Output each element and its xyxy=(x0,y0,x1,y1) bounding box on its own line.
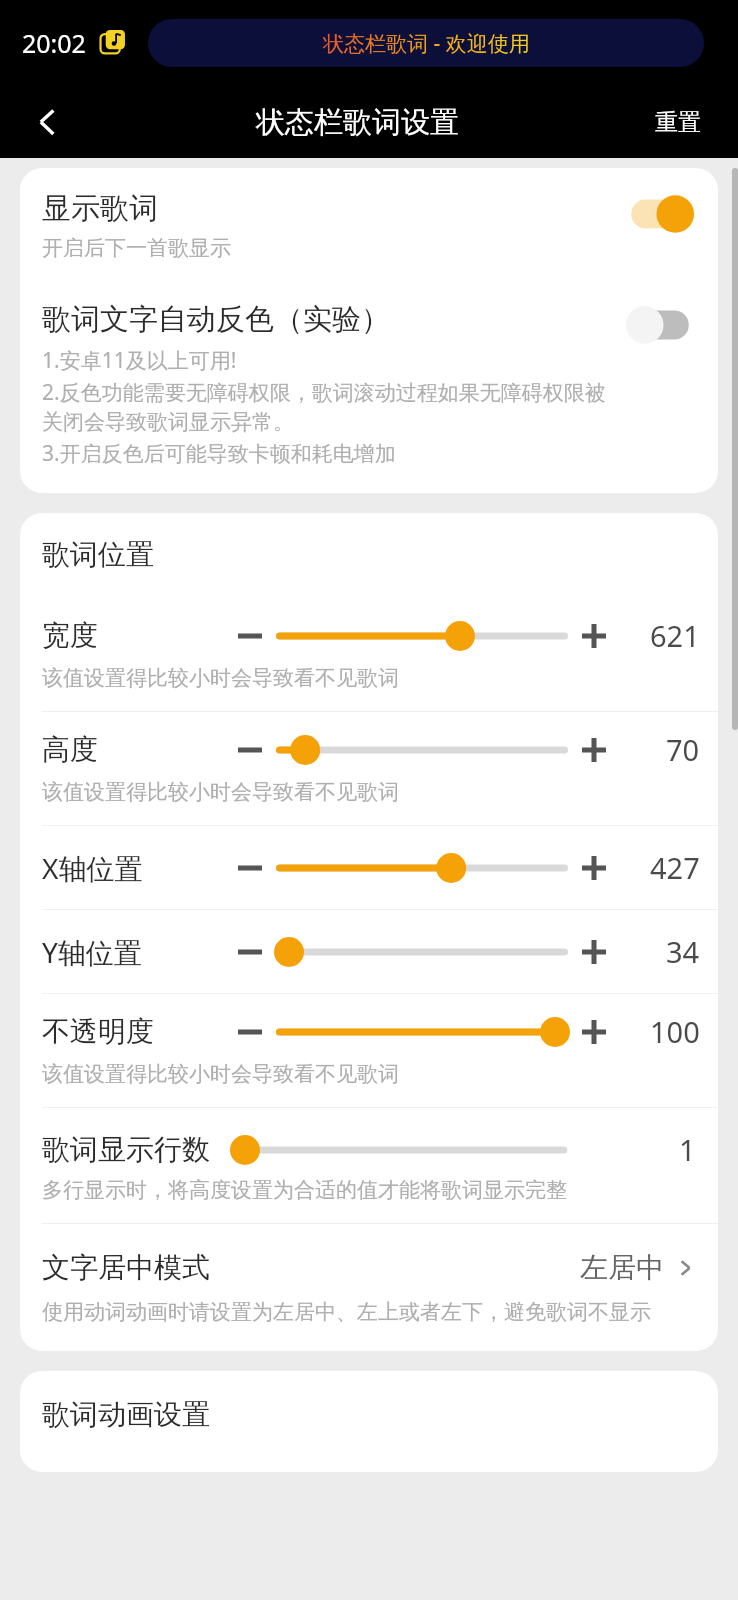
button[interactable]: Increase X轴位置 xyxy=(576,850,612,886)
staticText: 显示歌词 xyxy=(42,190,158,227)
staticText: 状态栏歌词 - 欢迎使用 xyxy=(323,29,530,58)
staticText: X轴位置 xyxy=(42,849,143,887)
button[interactable]: Toggle on xyxy=(624,194,696,234)
staticText: 使用动词动画时请设置为左居中、左上或者左下，避免歌词不显示 xyxy=(42,1299,651,1325)
button[interactable]: Y轴位置 xyxy=(20,910,718,993)
button[interactable]: Decrease 宽度 xyxy=(232,618,268,654)
button[interactable]: 重置 xyxy=(618,86,738,158)
button[interactable]: Back xyxy=(0,86,96,158)
staticText: 该值设置得比较小时会导致看不见歌词 xyxy=(42,779,399,805)
button[interactable]: 歌词文字自动反色（实验） xyxy=(42,301,696,467)
staticText: 歌词显示行数 xyxy=(42,1132,210,1167)
staticText: 高度 xyxy=(42,732,98,767)
button[interactable]: 显示歌词 xyxy=(42,190,696,261)
button[interactable]: 不透明度 xyxy=(20,994,718,1107)
button[interactable]: Increase 宽度 xyxy=(576,618,612,654)
staticText: Y轴位置 xyxy=(42,933,142,971)
staticText: 歌词动画设置 xyxy=(42,1397,210,1432)
button[interactable]: 文字居中模式 xyxy=(20,1224,718,1351)
button[interactable]: Decrease 高度 xyxy=(232,732,268,768)
staticText: 1.安卓11及以上可用! 2.反色功能需要无障碍权限，歌词滚动过程如果无障碍权限… xyxy=(42,346,612,467)
staticText: 左居中 xyxy=(580,1250,664,1285)
staticText: 多行显示时，将高度设置为合适的值才能将歌词显示完整 xyxy=(42,1177,567,1203)
button[interactable]: Decrease X轴位置 xyxy=(232,850,268,886)
staticText: 621 xyxy=(650,616,700,655)
staticText: 该值设置得比较小时会导致看不见歌词 xyxy=(42,665,399,691)
staticText: 34 xyxy=(666,932,700,971)
staticText: 1 xyxy=(679,1130,696,1169)
staticText: 歌词文字自动反色（实验） xyxy=(42,301,390,338)
button[interactable]: 状态栏歌词 - 欢迎使用 xyxy=(148,19,704,67)
button[interactable]: Toggle off xyxy=(624,305,696,345)
button[interactable]: 宽度 xyxy=(20,598,718,711)
staticText: 开启后下一首歌显示 xyxy=(42,235,231,261)
staticText: 状态栏歌词设置 xyxy=(256,104,459,141)
button[interactable]: Increase 不透明度 xyxy=(576,1014,612,1050)
staticText: 20:02 xyxy=(22,26,86,60)
button[interactable]: Decrease Y轴位置 xyxy=(232,934,268,970)
button[interactable]: 歌词显示行数 xyxy=(20,1108,718,1223)
staticText: 歌词位置 xyxy=(42,537,154,572)
staticText: 427 xyxy=(650,848,700,887)
button[interactable]: 高度 xyxy=(20,712,718,825)
staticText: 100 xyxy=(650,1012,700,1051)
staticText: 重置 xyxy=(655,108,701,137)
button[interactable]: X轴位置 xyxy=(20,826,718,909)
staticText: 文字居中模式 xyxy=(42,1250,210,1285)
button[interactable]: Decrease 不透明度 xyxy=(232,1014,268,1050)
staticText: 不透明度 xyxy=(42,1014,154,1049)
staticText: 70 xyxy=(666,730,700,769)
staticText: 该值设置得比较小时会导致看不见歌词 xyxy=(42,1061,399,1087)
button[interactable]: Increase 高度 xyxy=(576,732,612,768)
staticText: 宽度 xyxy=(42,618,98,653)
button[interactable]: Increase Y轴位置 xyxy=(576,934,612,970)
